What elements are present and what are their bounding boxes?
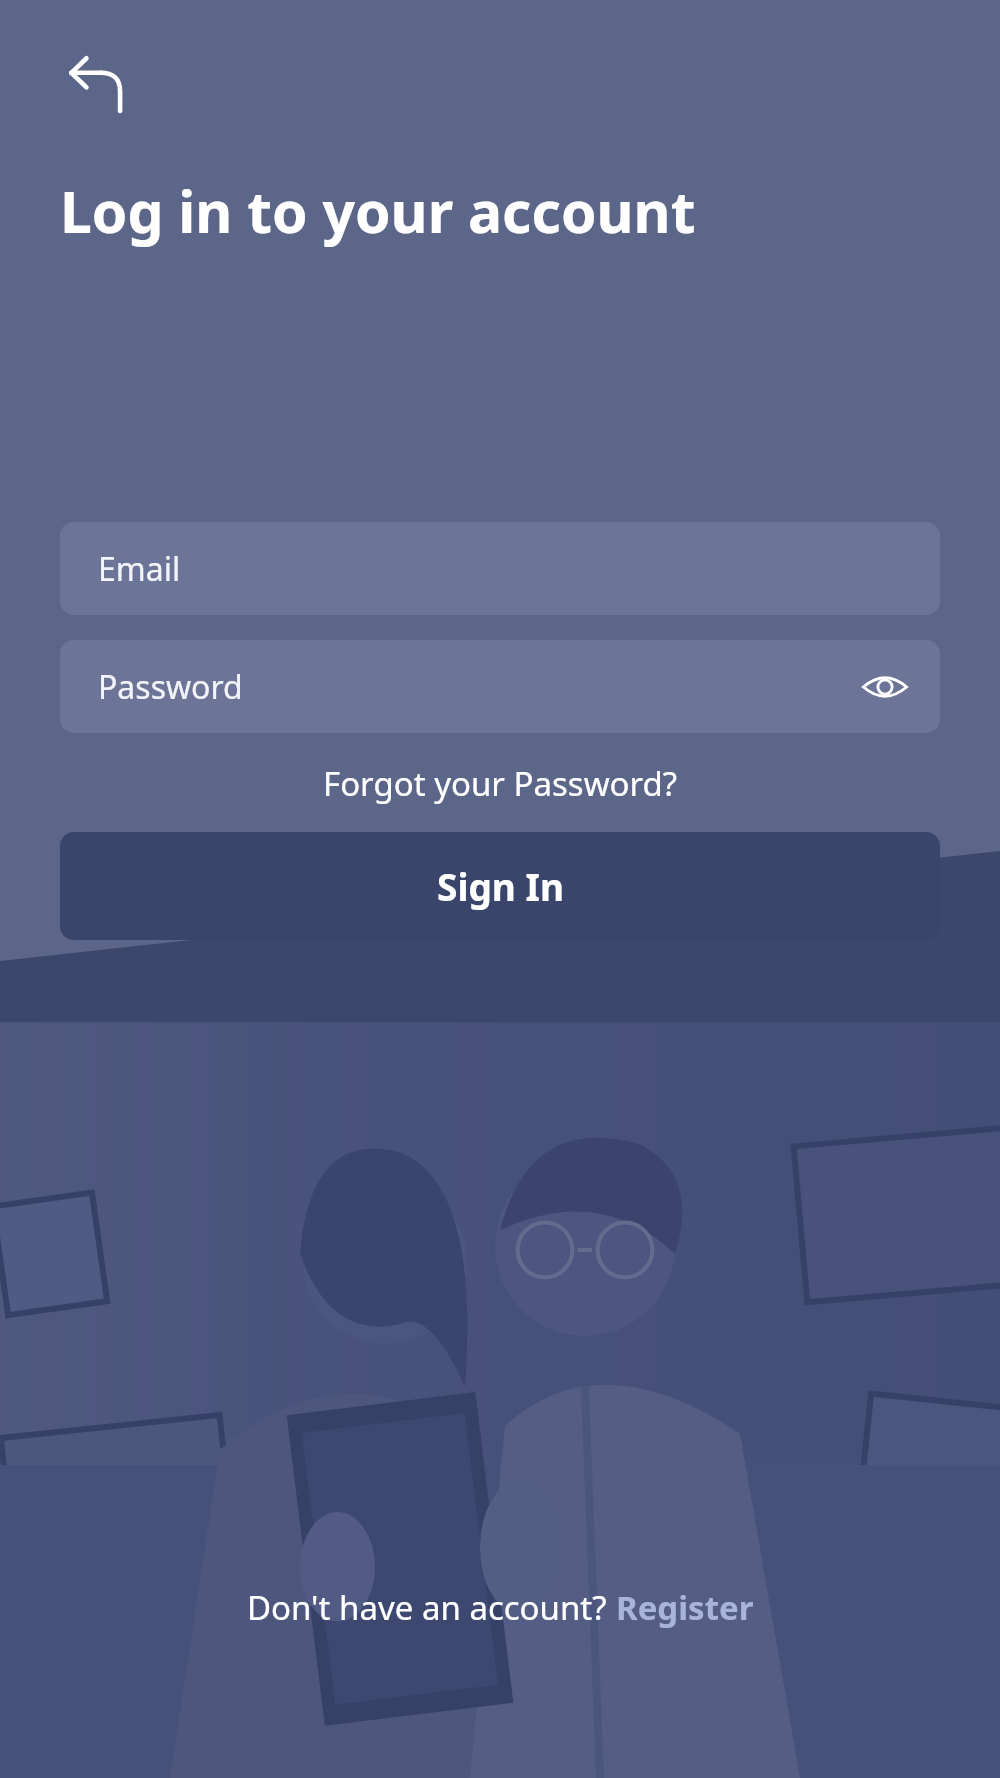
- staticText: Email: [98, 547, 181, 591]
- button[interactable]: Forgot your Password?: [0, 761, 1000, 806]
- button[interactable]: Password: [60, 640, 940, 733]
- staticText: Password: [98, 665, 243, 709]
- button[interactable]: Email: [60, 522, 940, 615]
- staticText: Sign In: [437, 861, 564, 911]
- button[interactable]: Show password: [856, 658, 914, 716]
- button[interactable]: Don't have an account?: [0, 1585, 1000, 1778]
- staticText: Log in to your account: [60, 172, 696, 250]
- staticText: Don't have an account?: [247, 1585, 616, 1630]
- staticText: Register: [616, 1585, 754, 1630]
- staticText: Forgot your Password?: [323, 761, 678, 806]
- button[interactable]: Back: [58, 46, 134, 122]
- button[interactable]: Sign In: [60, 832, 940, 940]
